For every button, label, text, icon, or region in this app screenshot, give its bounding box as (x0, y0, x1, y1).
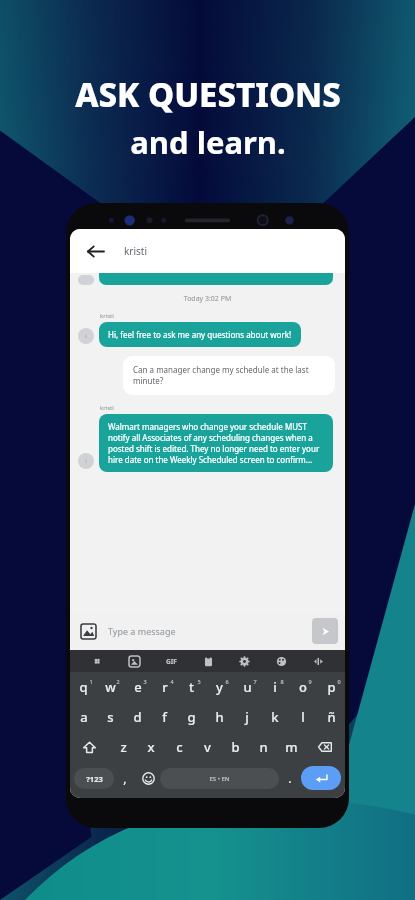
staticText: 0 (337, 678, 341, 685)
staticText: a (80, 708, 88, 726)
staticText: v (204, 738, 211, 756)
staticText: kristi (124, 244, 148, 258)
staticText: k (271, 708, 279, 726)
staticText: 8 (280, 678, 284, 685)
staticText: w (105, 678, 116, 696)
button[interactable]: Themes (271, 651, 291, 671)
button[interactable]: Type a message (108, 625, 306, 637)
staticText: and learn. (130, 121, 286, 163)
staticText: u (243, 678, 252, 696)
button[interactable]: g (178, 702, 205, 732)
button[interactable]: . (279, 762, 301, 794)
staticText: 7 (253, 678, 257, 685)
staticText: ?123 (86, 774, 103, 784)
button[interactable]: z (109, 732, 137, 762)
button[interactable]: Back (80, 236, 110, 266)
button[interactable]: Attach image (77, 620, 99, 642)
staticText: i (85, 332, 87, 340)
button[interactable]: Hi, feel free to ask me any questions ab… (99, 322, 301, 347)
button[interactable]: d (124, 702, 151, 732)
staticText: 4 (170, 678, 174, 685)
staticText: i (273, 678, 277, 696)
staticText: t (189, 678, 194, 696)
staticText: , (123, 770, 127, 786)
staticText: c (176, 738, 183, 756)
button[interactable]: ?123 (74, 768, 114, 789)
staticText: Walmart managers who change your schedul… (108, 421, 324, 465)
staticText: 9 (308, 678, 312, 685)
staticText: 2 (116, 678, 120, 685)
staticText: p (327, 678, 336, 696)
staticText: i (85, 457, 87, 465)
button[interactable]: Settings (234, 651, 254, 671)
button[interactable]: i (261, 672, 289, 702)
staticText: b (231, 738, 240, 756)
button[interactable]: f (151, 702, 178, 732)
button[interactable]: e (124, 672, 151, 702)
staticText: 5 (197, 678, 201, 685)
staticText: e (134, 678, 142, 696)
staticText: GIF (166, 657, 177, 666)
staticText: Can a manager change my schedule at the … (133, 364, 325, 387)
button[interactable]: l (289, 702, 317, 732)
button[interactable]: Walmart managers who change your schedul… (99, 414, 333, 472)
button[interactable]: Backspace (305, 732, 345, 762)
staticText: j (245, 708, 249, 726)
staticText: o (299, 678, 307, 696)
staticText: 6 (225, 678, 229, 685)
button[interactable]: h (205, 702, 233, 732)
staticText: 3 (143, 678, 147, 685)
staticText: n (259, 738, 268, 756)
button[interactable]: GIF (161, 651, 181, 671)
staticText: m (285, 738, 298, 756)
button[interactable]: Apps (87, 651, 107, 671)
button[interactable]: ES • EN (160, 768, 279, 789)
button[interactable]: u (233, 672, 261, 702)
button[interactable]: v (193, 732, 221, 762)
button[interactable]: Send (312, 618, 338, 644)
staticText: y (216, 678, 223, 696)
staticText: g (187, 708, 196, 726)
button[interactable]: p (317, 672, 345, 702)
button[interactable]: c (165, 732, 193, 762)
button[interactable]: m (277, 732, 305, 762)
staticText: 1 (89, 678, 93, 685)
button[interactable]: o (289, 672, 317, 702)
staticText: kristi (100, 404, 345, 412)
button[interactable]: y (205, 672, 233, 702)
staticText: ES • EN (209, 775, 230, 783)
staticText: x (147, 738, 155, 756)
staticText: ñ (327, 708, 336, 726)
button[interactable]: w (97, 672, 124, 702)
staticText: Type a message (108, 625, 176, 637)
button[interactable]: r (151, 672, 178, 702)
button[interactable]: a (70, 702, 97, 732)
staticText: f (162, 708, 167, 726)
button[interactable]: n (249, 732, 277, 762)
button[interactable]: s (97, 702, 124, 732)
staticText: q (79, 678, 88, 696)
staticText: l (301, 708, 305, 726)
staticText: r (162, 678, 168, 696)
button[interactable]: Enter (301, 766, 341, 790)
button[interactable]: ñ (317, 702, 345, 732)
button[interactable]: Clipboard (198, 651, 218, 671)
button[interactable]: Resize (308, 651, 328, 671)
button[interactable]: Can a manager change my schedule at the … (123, 356, 335, 395)
button[interactable]: Shift (70, 732, 109, 762)
staticText: Today 3:02 PM (70, 294, 345, 304)
button[interactable]: k (261, 702, 289, 732)
staticText: kristi (100, 312, 345, 320)
button[interactable]: , (114, 762, 136, 794)
button[interactable]: j (233, 702, 261, 732)
button[interactable]: Emoji (136, 762, 160, 794)
staticText: d (133, 708, 142, 726)
button[interactable]: b (221, 732, 249, 762)
staticText: s (107, 708, 114, 726)
staticText: Hi, feel free to ask me any questions ab… (108, 329, 292, 340)
button[interactable]: Stickers (124, 651, 144, 671)
button[interactable]: t (178, 672, 205, 702)
staticText: z (120, 738, 127, 756)
button[interactable]: x (137, 732, 165, 762)
button[interactable]: q (70, 672, 97, 702)
